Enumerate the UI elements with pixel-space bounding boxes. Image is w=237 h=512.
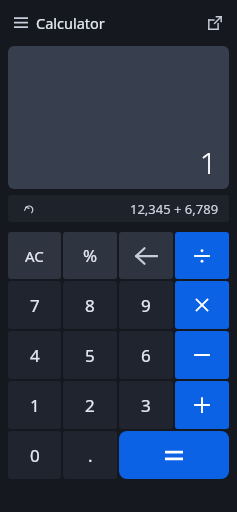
button[interactable]: 1 bbox=[8, 381, 61, 429]
staticText: % bbox=[83, 244, 98, 267]
staticText: Calculator bbox=[36, 13, 105, 33]
button[interactable]: 6 bbox=[119, 331, 173, 379]
button[interactable]: Menu bbox=[8, 10, 34, 36]
button[interactable]: 4 bbox=[8, 331, 61, 379]
staticText: . bbox=[88, 444, 93, 467]
staticText: 0 bbox=[30, 444, 40, 467]
button[interactable]: Equals bbox=[119, 431, 229, 479]
button[interactable]: . bbox=[63, 431, 117, 479]
button[interactable]: 7 bbox=[8, 281, 61, 329]
button[interactable]: Open in new window bbox=[201, 9, 229, 37]
staticText: 9 bbox=[141, 294, 151, 317]
button[interactable]: 9 bbox=[119, 281, 173, 329]
staticText: 1 bbox=[30, 394, 40, 417]
button[interactable]: 3 bbox=[119, 381, 173, 429]
button[interactable]: 8 bbox=[63, 281, 117, 329]
button[interactable]: Undo bbox=[20, 200, 38, 218]
staticText: 1 bbox=[199, 142, 217, 183]
staticText: AC bbox=[25, 246, 44, 266]
staticText: 12,345 + 6,789 bbox=[130, 200, 219, 218]
staticText: 6 bbox=[141, 344, 151, 367]
button[interactable]: Minus bbox=[175, 331, 229, 379]
button[interactable]: 2 bbox=[63, 381, 117, 429]
staticText: 2 bbox=[85, 394, 95, 417]
staticText: 7 bbox=[30, 294, 40, 317]
button[interactable]: Plus bbox=[175, 381, 229, 429]
button[interactable]: Multiply bbox=[175, 281, 229, 329]
staticText: 3 bbox=[141, 394, 151, 417]
staticText: 8 bbox=[85, 294, 95, 317]
staticText: 5 bbox=[85, 344, 95, 367]
button[interactable]: 1 bbox=[8, 46, 229, 189]
button[interactable]: % bbox=[63, 232, 117, 279]
button[interactable]: Backspace bbox=[119, 232, 173, 279]
button[interactable]: 5 bbox=[63, 331, 117, 379]
button[interactable]: 0 bbox=[8, 431, 61, 479]
button[interactable]: AC bbox=[8, 232, 61, 279]
button[interactable]: Divide bbox=[175, 232, 229, 279]
button[interactable]: Undo bbox=[8, 195, 229, 222]
staticText: 4 bbox=[30, 344, 40, 367]
